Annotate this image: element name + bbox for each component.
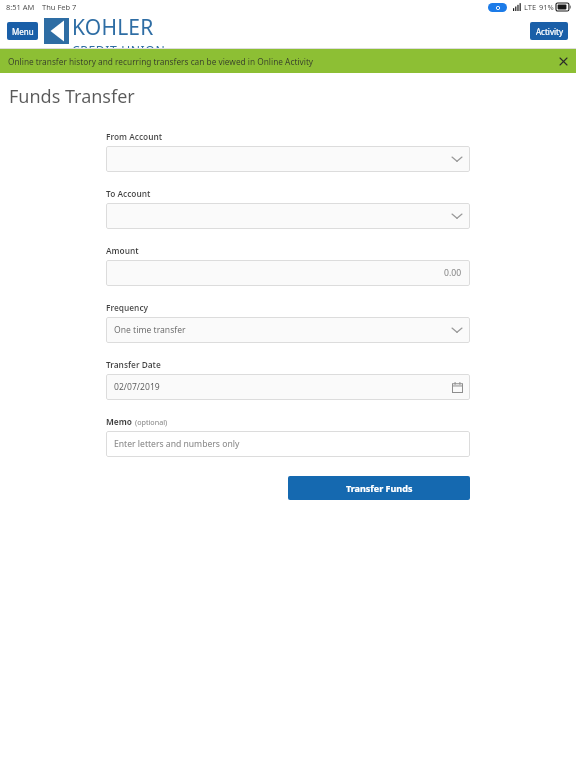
- button[interactable]: Menu: [7, 22, 38, 40]
- button[interactable]: Close banner: [554, 52, 572, 70]
- button[interactable]: Transfer date: [106, 374, 470, 400]
- staticText: 8:51 AM: [6, 2, 35, 12]
- staticText: One time transfer: [114, 324, 186, 336]
- staticText: KOHLER: [72, 13, 154, 42]
- staticText: 91%: [539, 2, 554, 12]
- button[interactable]: Memo: [106, 431, 470, 457]
- staticText: Transfer Date: [106, 359, 161, 370]
- staticText: Activity: [536, 26, 563, 37]
- staticText: Frequency: [106, 302, 149, 313]
- staticText: Amount: [106, 245, 139, 256]
- button[interactable]: KOHLER: [44, 13, 166, 48]
- button[interactable]: One time transfer: [106, 317, 470, 343]
- button[interactable]: Transfer Funds: [288, 476, 470, 500]
- button[interactable]: Select account: [106, 146, 470, 172]
- staticText: From Account: [106, 131, 163, 142]
- staticText: Transfer Funds: [346, 482, 413, 494]
- button[interactable]: Select account: [106, 203, 470, 229]
- staticText: Enter letters and numbers only: [114, 438, 240, 450]
- staticText: CREDIT UNION: [72, 42, 166, 48]
- button[interactable]: Open calendar: [451, 381, 464, 394]
- staticText: Thu Feb 7: [42, 2, 77, 12]
- staticText: To Account: [106, 188, 151, 199]
- staticText: 02/07/2019: [114, 381, 160, 393]
- staticText: 0.00: [444, 267, 462, 279]
- staticText: LTE: [524, 2, 537, 12]
- staticText: Memo: [106, 416, 133, 427]
- staticText: Menu: [12, 26, 34, 37]
- staticText: (optional): [135, 417, 168, 427]
- staticText: Funds Transfer: [9, 84, 135, 109]
- button[interactable]: Activity: [530, 22, 568, 40]
- button[interactable]: Amount: [106, 260, 470, 286]
- staticText: Online transfer history and recurring tr…: [8, 56, 314, 67]
